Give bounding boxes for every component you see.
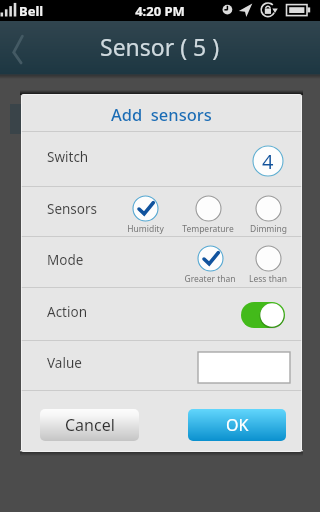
staticText: Switch — [47, 148, 89, 166]
button[interactable]: Switch count 4 — [252, 145, 284, 177]
staticText: Value — [47, 354, 82, 372]
staticText: Temperature — [182, 223, 234, 235]
button[interactable]: Back — [0, 21, 45, 74]
staticText: Humidity — [127, 223, 164, 235]
staticText: Greater than — [184, 273, 236, 285]
button[interactable]: Less than — [239, 245, 297, 285]
button[interactable]: Humidity — [117, 195, 173, 235]
staticText: Add sensors — [111, 103, 212, 125]
staticText: Dimming — [250, 223, 287, 235]
staticText: OK — [226, 414, 249, 436]
staticText: Sensor ( 5 ) — [100, 31, 220, 62]
staticText: Bell — [19, 2, 44, 20]
button[interactable]: Value field — [198, 352, 290, 383]
button[interactable]: Cancel — [40, 409, 139, 441]
staticText: 4 — [262, 148, 274, 175]
staticText: Action — [47, 303, 87, 321]
button[interactable]: Action toggle — [241, 302, 285, 328]
staticText: Less than — [249, 273, 287, 285]
staticText: 4:20 PM — [0, 2, 320, 20]
staticText: Cancel — [65, 414, 115, 436]
button[interactable]: OK — [188, 409, 286, 441]
staticText: Sensors — [47, 200, 98, 218]
button[interactable]: Dimming — [240, 195, 296, 235]
button[interactable]: Greater than — [178, 245, 242, 285]
button[interactable]: Temperature — [176, 195, 240, 235]
staticText: Mode — [47, 251, 84, 269]
